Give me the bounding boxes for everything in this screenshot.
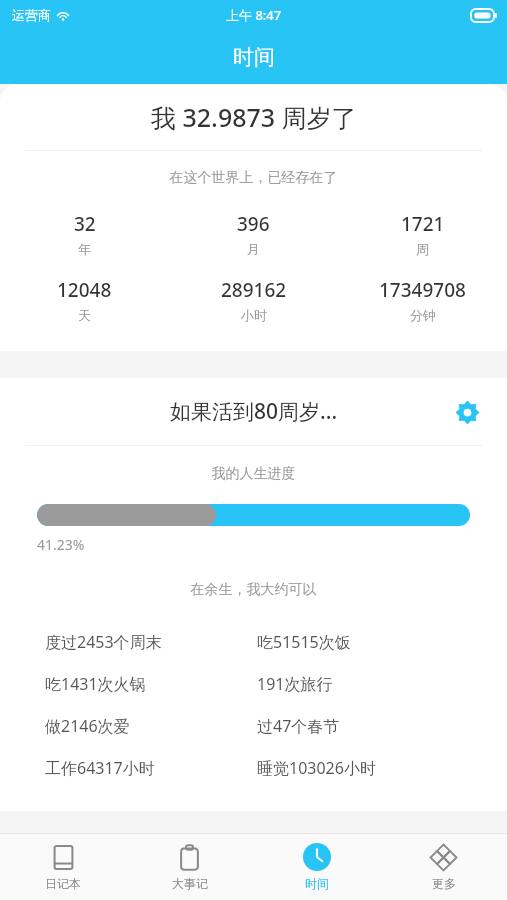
staticText: 在余生，我大约可以 [0, 581, 507, 599]
staticText: 周 [416, 241, 429, 257]
staticText: 1721 [401, 211, 445, 237]
staticText: 41.23% [37, 535, 507, 554]
staticText: 日记本 [45, 876, 81, 891]
staticText: 吃51515次饭 [257, 631, 351, 653]
button[interactable]: 更多 [380, 834, 507, 900]
staticText: 天 [78, 307, 91, 323]
staticText: 做2146次爱 [45, 715, 130, 737]
staticText: 时间 [233, 44, 275, 70]
staticText: 396 [237, 211, 270, 237]
staticText: 191次旅行 [257, 673, 333, 695]
staticText: 我的人生进度 [0, 465, 507, 483]
staticText: 过47个春节 [257, 715, 340, 737]
staticText: 289162 [221, 277, 287, 303]
button[interactable]: 大事记 [126, 834, 253, 900]
staticText: 更多 [432, 876, 456, 891]
staticText: 吃1431次火锅 [45, 673, 146, 695]
staticText: 分钟 [410, 307, 436, 323]
staticText: 我 32.9873 周岁了 [151, 100, 357, 134]
staticText: 度过2453个周末 [45, 631, 162, 653]
staticText: 17349708 [379, 277, 466, 303]
staticText: 在这个世界上，已经存在了 [0, 169, 507, 187]
staticText: 32 [74, 211, 96, 237]
staticText: 运营商 [12, 7, 51, 23]
button[interactable]: 日记本 [0, 834, 126, 900]
staticText: 月 [247, 241, 260, 257]
staticText: 工作64317小时 [45, 757, 155, 779]
staticText: 时间 [305, 876, 329, 891]
staticText: 上午 8:47 [226, 6, 282, 24]
staticText: 睡觉103026小时 [257, 757, 376, 779]
staticText: 12048 [57, 277, 112, 303]
button[interactable]: 时间 [253, 834, 380, 900]
staticText: 如果活到80周岁... [170, 397, 338, 426]
staticText: 大事记 [172, 876, 208, 891]
staticText: 小时 [241, 307, 267, 323]
button[interactable]: 设置 [450, 395, 484, 429]
staticText: 年 [78, 241, 91, 257]
